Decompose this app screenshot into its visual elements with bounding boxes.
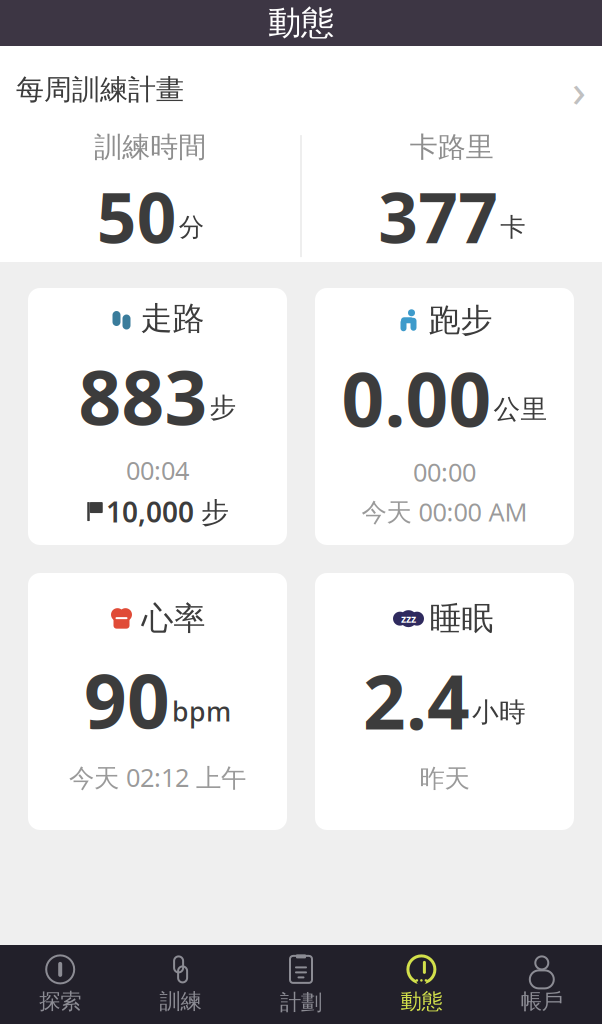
- staticText: 計劃: [280, 989, 322, 1016]
- button[interactable]: 跑步: [315, 288, 574, 545]
- staticText: 00:04: [126, 453, 189, 487]
- staticText: ›: [572, 60, 586, 120]
- staticText: 跑步: [428, 301, 492, 340]
- button[interactable]: zzz: [315, 573, 574, 830]
- staticText: 377: [378, 170, 498, 262]
- staticText: 10,000 步: [106, 493, 229, 530]
- staticText: bpm: [172, 693, 231, 729]
- staticText: 50: [97, 170, 177, 262]
- staticText: 今天 00:00 AM: [361, 495, 527, 528]
- button[interactable]: 心率: [28, 573, 287, 830]
- button[interactable]: 每周訓練計畫: [0, 46, 602, 262]
- staticText: 走路: [140, 299, 204, 338]
- staticText: 2.4: [363, 651, 470, 750]
- button[interactable]: 帳戶: [482, 946, 602, 1023]
- staticText: 公里: [493, 393, 547, 426]
- staticText: 卡路里: [410, 130, 494, 164]
- button[interactable]: 計劃: [241, 945, 361, 1024]
- staticText: 動態: [400, 988, 442, 1015]
- staticText: 訓練時間: [94, 130, 206, 164]
- staticText: 昨天: [419, 763, 469, 794]
- button[interactable]: 動態: [361, 946, 482, 1023]
- staticText: 動態: [268, 2, 334, 43]
- staticText: 今天 02:12 上午: [69, 760, 246, 794]
- staticText: 步: [209, 391, 236, 424]
- staticText: 00:00: [413, 455, 476, 489]
- staticText: zzz: [401, 612, 416, 626]
- staticText: 帳戶: [521, 988, 563, 1015]
- staticText: 90: [84, 650, 170, 749]
- staticText: 分: [179, 212, 204, 243]
- staticText: 883: [78, 346, 207, 445]
- button[interactable]: 走路: [28, 288, 287, 545]
- staticText: 訓練: [160, 988, 202, 1015]
- staticText: 睡眠: [429, 599, 493, 638]
- staticText: 每周訓練計畫: [16, 73, 184, 107]
- staticText: 探索: [39, 988, 81, 1015]
- staticText: 0.00: [341, 348, 491, 447]
- button[interactable]: 訓練: [120, 946, 241, 1023]
- staticText: 卡: [500, 212, 525, 243]
- staticText: 小時: [472, 696, 526, 729]
- button[interactable]: 探索: [0, 946, 120, 1023]
- staticText: 心率: [141, 599, 205, 638]
